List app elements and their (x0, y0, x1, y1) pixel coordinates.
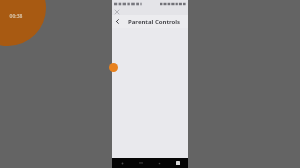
button[interactable]: Recents (151, 158, 167, 168)
button[interactable]: More (170, 158, 186, 168)
staticText: Parental Controls (128, 18, 181, 26)
staticText: 00:38 (0, 13, 32, 20)
button[interactable]: Back (114, 158, 130, 168)
button[interactable]: Close (113, 8, 120, 15)
button[interactable]: Back (112, 15, 122, 28)
button[interactable]: Home (133, 158, 149, 168)
button[interactable]: Help (109, 63, 118, 72)
